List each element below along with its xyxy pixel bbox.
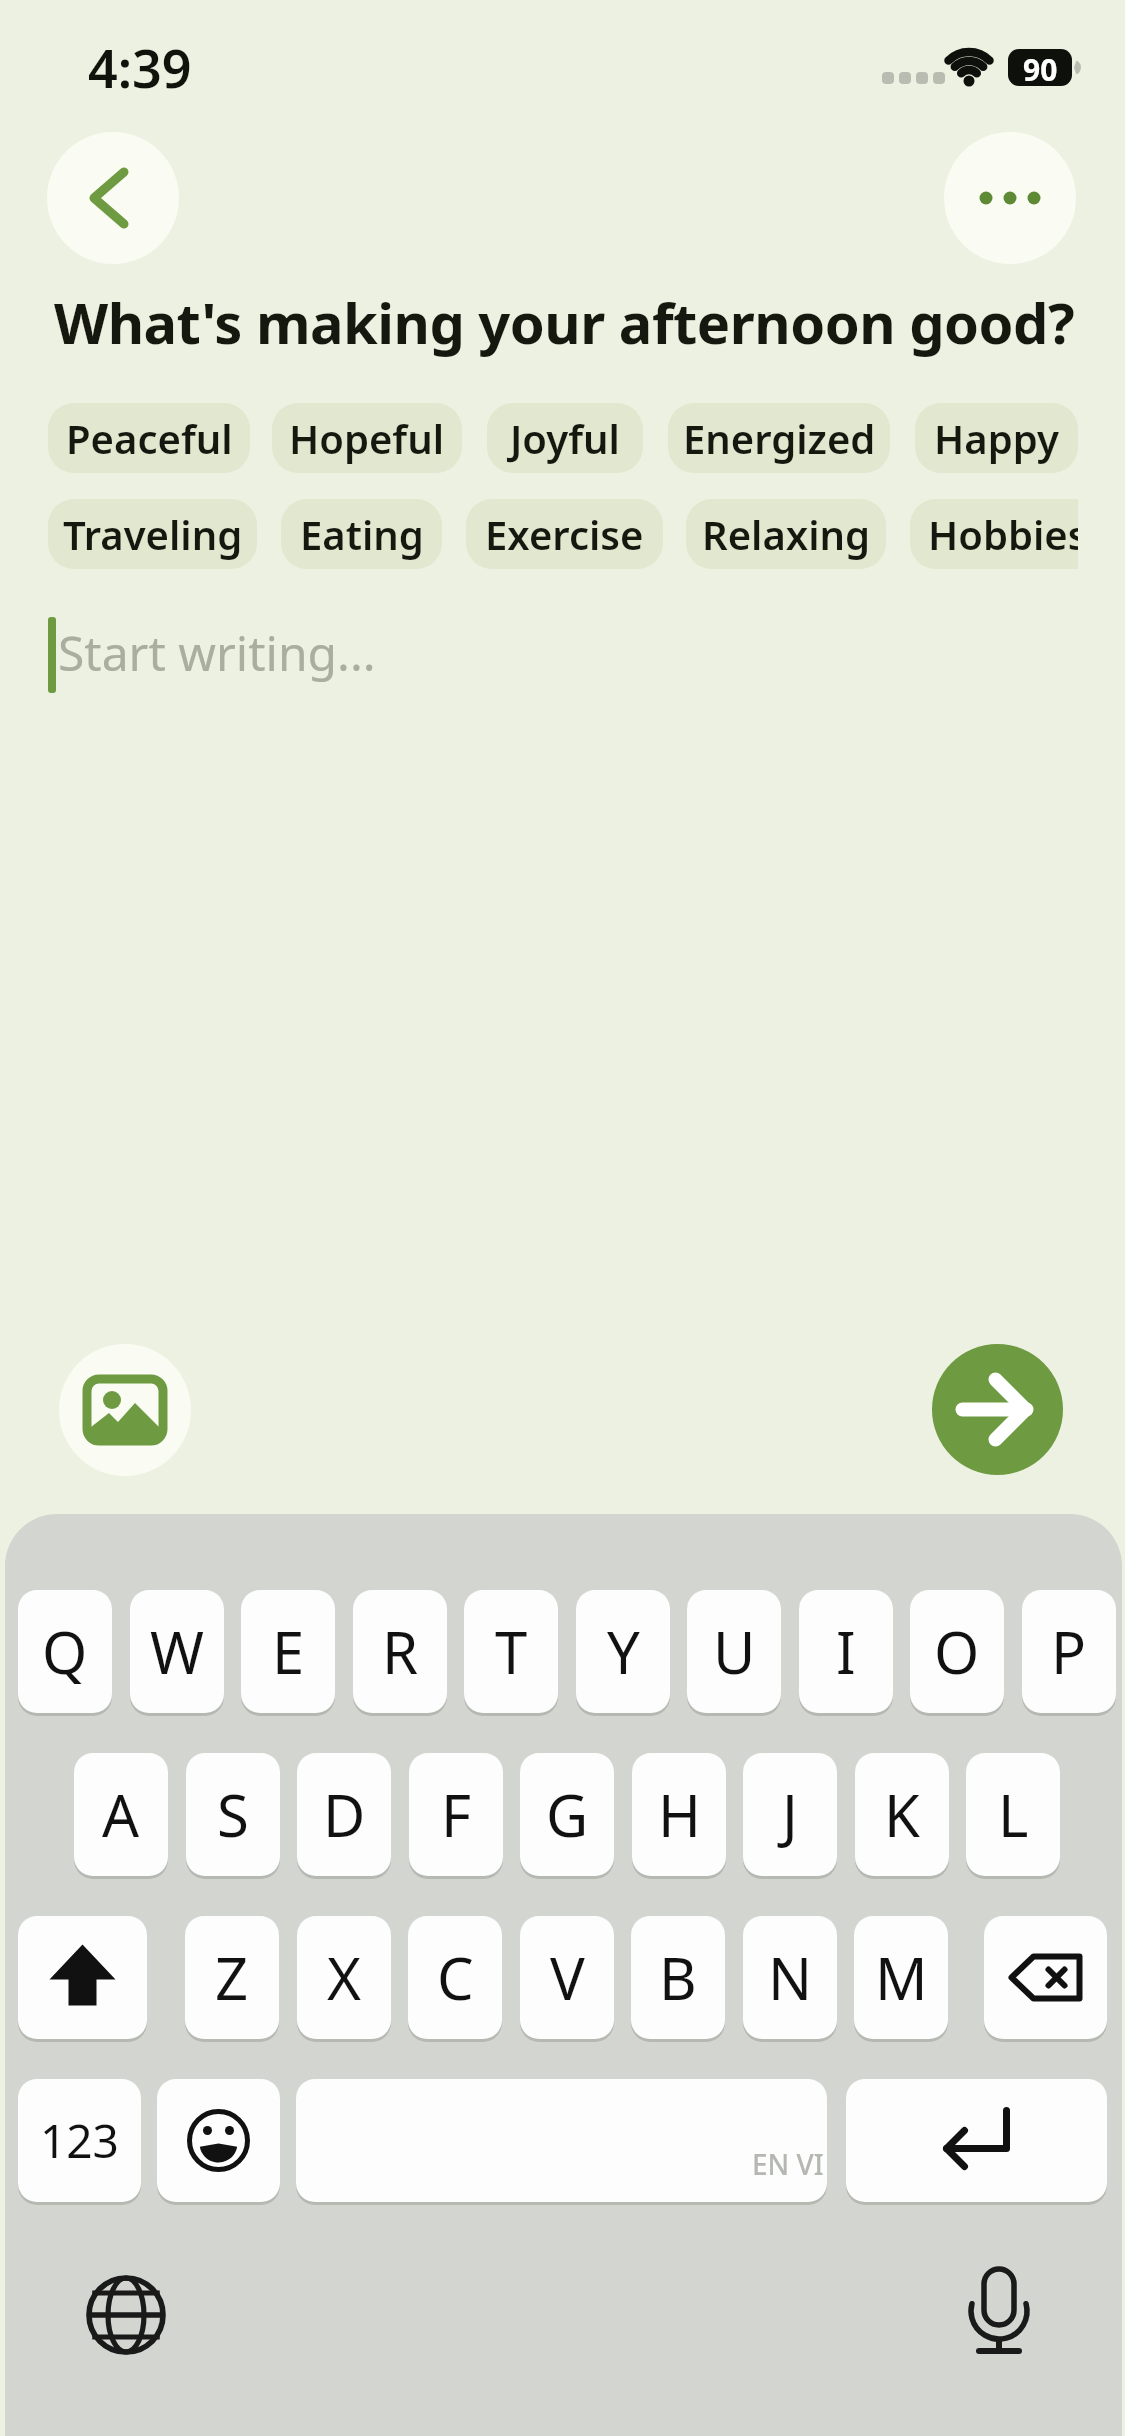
button[interactable]: Q <box>18 1590 112 1713</box>
staticText: W <box>150 1612 204 1691</box>
button[interactable]: E <box>241 1590 335 1713</box>
staticText: Q <box>42 1612 88 1691</box>
staticText: Relaxing <box>702 507 871 561</box>
button[interactable] <box>47 132 179 264</box>
button[interactable]: Peaceful <box>48 403 250 473</box>
staticText: Y <box>607 1612 640 1691</box>
staticText: Happy <box>934 411 1059 465</box>
button[interactable] <box>846 2079 1107 2202</box>
staticText: F <box>441 1775 472 1854</box>
button[interactable]: Exercise <box>466 499 663 569</box>
button[interactable]: F <box>409 1753 503 1876</box>
staticText: R <box>382 1612 419 1691</box>
staticText: Energized <box>683 411 876 465</box>
button[interactable]: R <box>353 1590 447 1713</box>
staticText: J <box>782 1775 798 1854</box>
button[interactable]: P <box>1022 1590 1116 1713</box>
button[interactable]: C <box>408 1916 502 2039</box>
staticText: C <box>437 1938 474 2017</box>
button[interactable] <box>59 1344 191 1476</box>
button[interactable]: Traveling <box>48 499 257 569</box>
button[interactable]: D <box>297 1753 391 1876</box>
button[interactable]: L <box>966 1753 1060 1876</box>
staticText: Hopeful <box>289 411 445 465</box>
button[interactable]: H <box>632 1753 726 1876</box>
button[interactable] <box>944 132 1076 264</box>
staticText: Joyful <box>510 411 620 465</box>
staticText: Start writing... <box>58 620 376 685</box>
staticText: I <box>836 1612 856 1691</box>
button[interactable]: S <box>186 1753 280 1876</box>
button[interactable] <box>296 2079 827 2202</box>
button[interactable]: 123 <box>18 2079 141 2202</box>
button[interactable]: Energized <box>668 403 890 473</box>
staticText: H <box>658 1775 701 1854</box>
button[interactable]: Hopeful <box>272 403 462 473</box>
staticText: L <box>998 1775 1029 1854</box>
staticText: M <box>875 1938 928 2017</box>
staticText: A <box>102 1775 140 1854</box>
staticText: V <box>550 1938 585 2017</box>
staticText: Z <box>215 1938 249 2017</box>
button[interactable] <box>984 1916 1107 2039</box>
staticText: K <box>884 1775 920 1854</box>
staticText: X <box>327 1938 361 2017</box>
staticText: Exercise <box>485 507 644 561</box>
button[interactable]: B <box>631 1916 725 2039</box>
staticText: 4:39 <box>88 32 192 103</box>
staticText: P <box>1051 1612 1087 1691</box>
staticText: Hobbies <box>928 507 1078 561</box>
staticText: D <box>323 1775 366 1854</box>
button[interactable]: K <box>855 1753 949 1876</box>
button[interactable]: W <box>130 1590 224 1713</box>
button[interactable]: V <box>520 1916 614 2039</box>
button[interactable] <box>157 2079 280 2202</box>
button[interactable] <box>18 1916 147 2039</box>
button[interactable]: U <box>687 1590 781 1713</box>
staticText: EN VI <box>752 2145 824 2183</box>
button[interactable]: Y <box>576 1590 670 1713</box>
staticText: T <box>495 1612 528 1691</box>
staticText: G <box>546 1775 589 1854</box>
button[interactable]: N <box>743 1916 837 2039</box>
button[interactable]: J <box>743 1753 837 1876</box>
button[interactable]: Joyful <box>487 403 643 473</box>
staticText: Peaceful <box>66 411 233 465</box>
button[interactable]: O <box>910 1590 1004 1713</box>
button[interactable]: Relaxing <box>686 499 886 569</box>
button[interactable]: X <box>297 1916 391 2039</box>
staticText: 90 <box>1023 49 1058 86</box>
button[interactable]: T <box>464 1590 558 1713</box>
staticText: B <box>659 1938 697 2017</box>
staticText: What's making your afternoon good? <box>54 284 1075 360</box>
staticText: Eating <box>300 507 424 561</box>
button[interactable]: A <box>74 1753 168 1876</box>
staticText: N <box>768 1938 813 2017</box>
staticText: Traveling <box>63 507 243 561</box>
button[interactable]: G <box>520 1753 614 1876</box>
staticText: U <box>713 1612 756 1691</box>
button[interactable]: I <box>799 1590 893 1713</box>
staticText: 123 <box>40 2109 119 2172</box>
staticText: O <box>934 1612 980 1691</box>
staticText: S <box>217 1775 249 1854</box>
button[interactable]: Z <box>185 1916 279 2039</box>
button[interactable]: Hobbies <box>910 499 1078 569</box>
button[interactable] <box>932 1344 1063 1475</box>
button[interactable]: M <box>854 1916 948 2039</box>
button[interactable]: Eating <box>281 499 442 569</box>
button[interactable]: Happy <box>915 403 1078 473</box>
staticText: E <box>272 1612 305 1691</box>
